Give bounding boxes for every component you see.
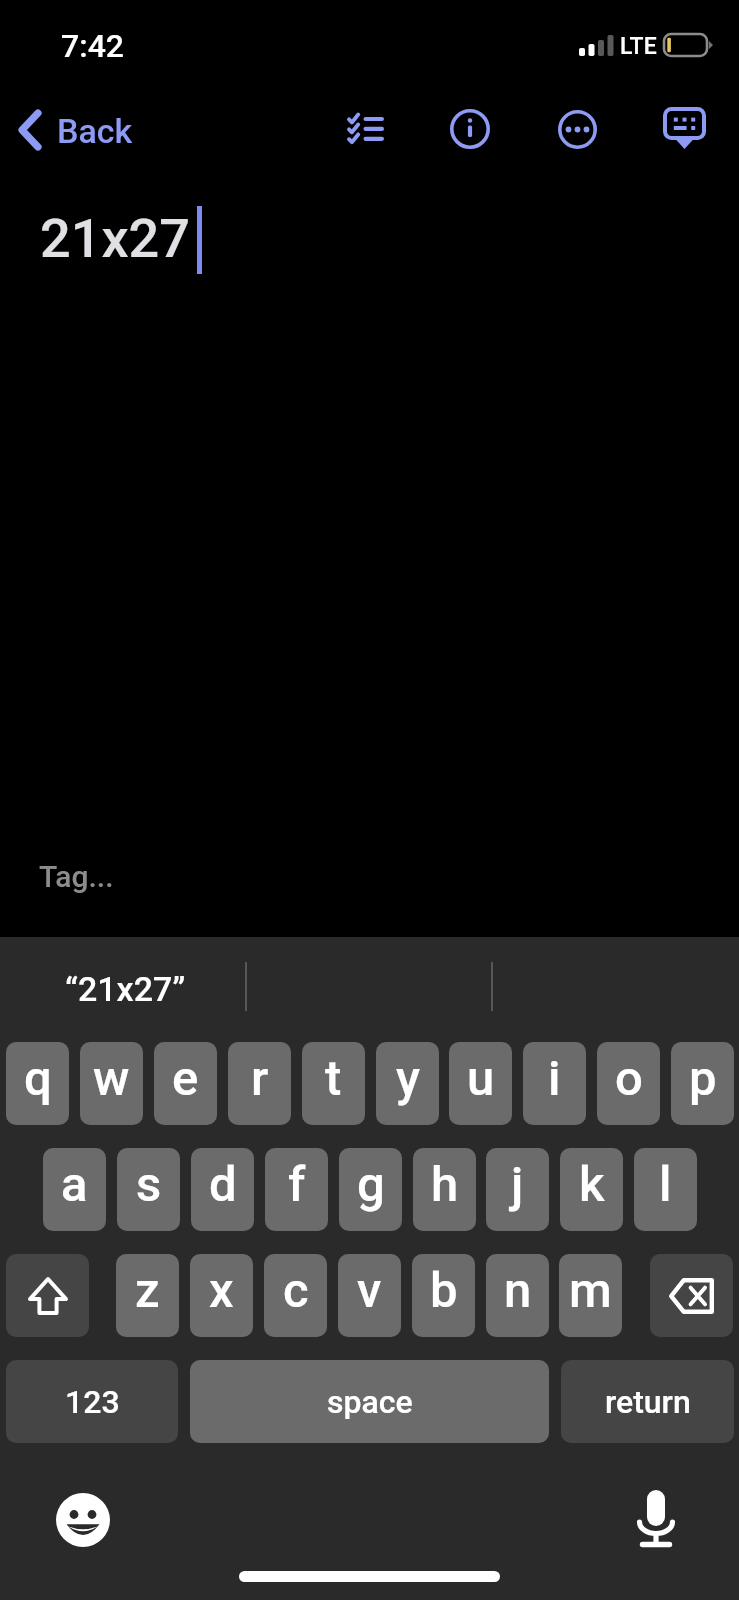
staticText: 7:42 (61, 27, 124, 65)
staticText: space (327, 1383, 413, 1421)
staticText: Tag... (39, 859, 114, 894)
staticText: b (430, 1262, 458, 1319)
button[interactable]: Info (436, 95, 504, 163)
staticText: s (136, 1156, 162, 1213)
staticText: u (467, 1050, 495, 1107)
staticText: k (579, 1156, 605, 1213)
button[interactable]: 123 (6, 1360, 178, 1443)
staticText: e (172, 1050, 199, 1107)
staticText: x (209, 1262, 234, 1319)
staticText: “21x27” (65, 969, 186, 1009)
staticText: d (209, 1156, 237, 1213)
button[interactable]: i (523, 1042, 586, 1125)
staticText: w (93, 1050, 130, 1107)
staticText: y (396, 1050, 420, 1107)
staticText: m (569, 1262, 612, 1319)
button[interactable]: n (486, 1254, 549, 1337)
button[interactable]: c (264, 1254, 327, 1337)
button[interactable]: e (154, 1042, 217, 1125)
button[interactable]: Dictation (627, 1483, 684, 1555)
staticText: l (659, 1156, 672, 1213)
staticText: n (504, 1262, 532, 1319)
button[interactable]: r (228, 1042, 291, 1125)
staticText: LTE (620, 33, 657, 60)
staticText: f (288, 1156, 306, 1213)
button[interactable]: Shift (6, 1254, 89, 1337)
staticText: h (431, 1156, 459, 1213)
button[interactable]: Hide keyboard (650, 95, 718, 163)
staticText: v (357, 1262, 382, 1319)
button[interactable]: w (80, 1042, 143, 1125)
staticText: g (357, 1156, 385, 1213)
button[interactable]: l (634, 1148, 697, 1231)
staticText: j (511, 1156, 524, 1213)
button[interactable]: Emoji (47, 1484, 119, 1556)
staticText: p (689, 1050, 717, 1107)
button[interactable]: x (190, 1254, 253, 1337)
button[interactable]: z (116, 1254, 179, 1337)
button[interactable]: Backspace (650, 1254, 733, 1337)
staticText: c (283, 1262, 309, 1319)
button[interactable]: q (6, 1042, 69, 1125)
staticText: Back (57, 111, 133, 151)
button[interactable]: Back (4, 96, 154, 164)
button[interactable]: t (302, 1042, 365, 1125)
button[interactable]: space (190, 1360, 549, 1443)
staticText: r (251, 1050, 269, 1107)
button[interactable]: d (191, 1148, 254, 1231)
button[interactable]: m (559, 1254, 622, 1337)
button[interactable]: b (412, 1254, 475, 1337)
button[interactable]: y (376, 1042, 439, 1125)
button[interactable]: v (338, 1254, 401, 1337)
staticText: q (24, 1050, 52, 1107)
staticText: 123 (65, 1383, 120, 1421)
staticText: o (615, 1050, 643, 1107)
button[interactable]: h (413, 1148, 476, 1231)
staticText: a (61, 1156, 88, 1213)
button[interactable]: More options (543, 95, 611, 163)
staticText: i (548, 1050, 561, 1107)
button[interactable]: o (597, 1042, 660, 1125)
button[interactable]: Tag... (0, 838, 739, 937)
staticText: z (135, 1262, 160, 1319)
button[interactable]: Note body (0, 168, 739, 838)
staticText: 21x27 (40, 207, 190, 270)
button[interactable]: p (671, 1042, 734, 1125)
button[interactable]: s (117, 1148, 180, 1231)
button[interactable]: a (43, 1148, 106, 1231)
button[interactable]: j (486, 1148, 549, 1231)
staticText: return (605, 1383, 691, 1421)
button[interactable]: g (339, 1148, 402, 1231)
button[interactable]: k (560, 1148, 623, 1231)
button[interactable]: u (449, 1042, 512, 1125)
button[interactable]: return (561, 1360, 734, 1443)
staticText: t (325, 1050, 342, 1107)
button[interactable]: Checklist (331, 95, 399, 163)
button[interactable]: f (265, 1148, 328, 1231)
